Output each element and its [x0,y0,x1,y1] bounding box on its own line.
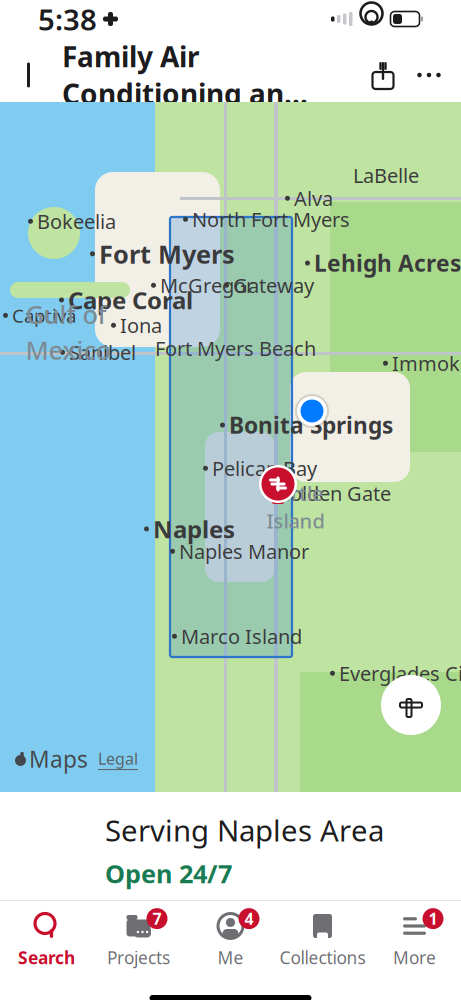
staticText: Bonita Springs [229,410,393,440]
staticText: 4 [244,908,253,929]
staticText: 1 [428,908,437,929]
button[interactable]: Search [0,912,92,968]
staticText: Immokalee [392,350,461,377]
staticText: Everglades City [339,660,461,687]
staticText: Turtle [268,480,323,506]
staticText: McGregor [160,272,254,299]
button[interactable]: Back [8,52,54,98]
staticText: Iona [120,312,162,339]
button[interactable]: Legal [98,748,138,770]
staticText: Me [217,946,243,969]
button[interactable]: Center on my location [379,673,443,737]
staticText: Gulf of [25,297,106,331]
staticText: Open 24/7 [105,857,232,890]
staticText: Gateway [233,272,314,299]
staticText: Cape Coral [68,284,193,316]
button[interactable]: 4 [184,912,276,968]
button[interactable]: More options [405,52,453,98]
staticText: Projects [107,946,170,969]
staticText: Island [266,507,324,534]
staticText: Mexico [25,333,110,367]
staticText: Pelican Bay [212,455,317,482]
button[interactable]: 1 [368,912,460,968]
staticText: Family Air Conditioning an... [62,38,308,112]
button[interactable]: 7 [92,912,184,968]
staticText: Fort Myers Beach [155,335,316,362]
staticText: Sanibel [69,339,136,366]
staticText: 5:38 [38,0,97,38]
staticText: Marco Island [181,623,302,650]
staticText: Golden Gate [275,480,391,507]
staticText: Alva [294,185,333,212]
staticText: Collections [279,946,365,969]
staticText: Legal [98,748,138,769]
staticText: More [393,946,436,969]
staticText: Naples Manor [179,538,309,565]
button[interactable]: Share [361,52,405,98]
staticText: Bokeelia [37,208,116,235]
staticText: Lehigh Acres [314,248,461,278]
staticText: Search [18,946,75,969]
staticText: North Fort Myers [192,206,350,233]
staticText: Serving Naples Area [105,811,384,850]
staticText: Fort Myers [99,237,235,271]
staticText: LaBelle [353,162,419,189]
staticText: Captiva [12,303,76,328]
staticText: Maps [29,744,88,774]
staticText: 7 [152,908,161,929]
button[interactable]: Collections [276,912,368,968]
staticText: Naples [153,513,235,545]
